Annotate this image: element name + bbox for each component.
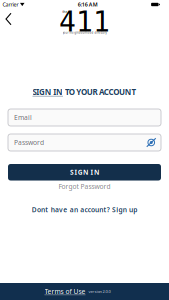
button[interactable]: Email: [0, 109, 169, 126]
staticText: Forgot Password: [58, 182, 110, 191]
button[interactable]: Password: [0, 134, 169, 151]
button[interactable]: SIGN IN: [0, 164, 169, 180]
button[interactable]: Back: [0, 7, 11, 31]
staticText: SIGN IN: [70, 168, 99, 177]
staticText: version 2.0.0: [88, 289, 110, 294]
staticText: 411: [59, 6, 110, 38]
staticText: 6:16 AM: [78, 1, 98, 8]
staticText: Carrier: [2, 1, 18, 8]
button[interactable]: Terms of Use: [44, 287, 85, 296]
staticText: Dont have an account? Sign up: [32, 205, 137, 214]
staticText: the: [62, 10, 67, 14]
staticText: Terms of Use: [44, 287, 85, 296]
staticText: TO YOUR ACCOUNT: [65, 87, 136, 97]
button[interactable]: Show password: [146, 134, 161, 151]
button[interactable]: Dont have an account? Sign up: [28, 203, 141, 216]
staticText: SIGN IN: [32, 87, 63, 97]
staticText: Password: [14, 138, 44, 147]
button[interactable]: Forgot Password: [54, 180, 114, 192]
staticText: Email: [14, 113, 32, 122]
staticText: your neighbourhood directory: [62, 31, 106, 34]
